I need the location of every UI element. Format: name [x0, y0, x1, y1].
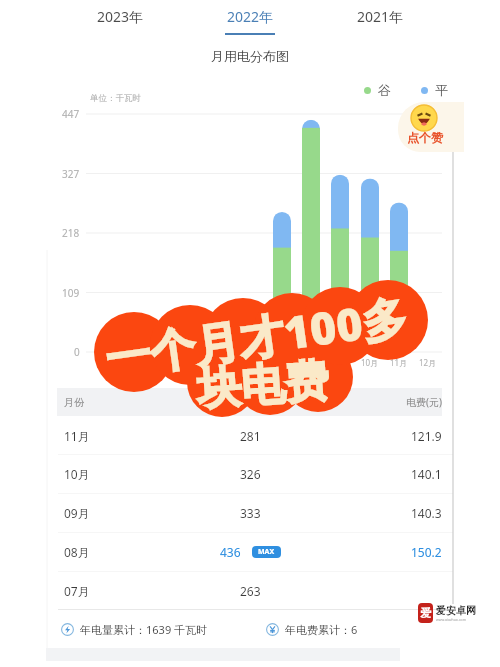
button[interactable]: 10月	[47, 454, 453, 493]
button[interactable]: Fee total	[266, 622, 358, 637]
staticText: 10月	[361, 357, 379, 368]
staticText: 08月	[302, 357, 320, 368]
staticText: 333	[240, 505, 261, 521]
button[interactable]: 08月	[47, 532, 453, 571]
button[interactable]: 谷	[364, 82, 391, 98]
staticText: 11月	[64, 428, 90, 444]
staticText: 月份	[64, 396, 84, 409]
staticText: 2022年	[227, 7, 274, 26]
staticText: 08月	[64, 544, 90, 560]
staticText: 2023年	[97, 7, 144, 26]
staticText: 年电量累计：1639 千瓦时	[80, 622, 208, 637]
staticText: 单位：千瓦时	[90, 93, 141, 104]
staticText: 谷	[378, 82, 391, 98]
staticText: 281	[240, 428, 261, 444]
staticText: 218	[62, 226, 80, 240]
staticText: 263	[240, 583, 261, 599]
staticText: 11月	[390, 357, 408, 368]
staticText: 447	[62, 107, 80, 121]
staticText: 109	[62, 286, 80, 300]
staticText: 爱	[420, 606, 431, 620]
button[interactable]: 2023年	[87, 0, 153, 35]
staticText: 月用电分布图	[211, 48, 289, 64]
staticText: 2021年	[357, 7, 404, 26]
staticText: 121.9	[411, 428, 442, 444]
staticText: 07月	[273, 357, 291, 368]
staticText: 平	[435, 82, 448, 98]
other: Energy total	[61, 623, 74, 636]
button[interactable]: Like	[398, 102, 464, 152]
staticText: 点个赞	[407, 130, 443, 145]
button[interactable]: 07月	[47, 571, 453, 610]
staticText: 块电费	[195, 353, 331, 418]
staticText: 年电费累计：6	[285, 622, 358, 637]
staticText: 140.3	[411, 505, 442, 521]
other: Fee total	[266, 623, 279, 636]
button[interactable]: Energy total	[61, 622, 208, 637]
staticText: 一个月才100多	[101, 285, 412, 388]
staticText: 12月	[419, 357, 437, 368]
button[interactable]: 平	[421, 82, 448, 98]
staticText: MAX	[258, 547, 275, 557]
staticText: 0	[74, 345, 80, 359]
staticText: 电费(元)	[406, 395, 442, 409]
staticText: 爱安卓网	[436, 604, 476, 617]
staticText: 09月	[64, 505, 90, 521]
button[interactable]: 2022年	[217, 0, 283, 35]
staticText: 436	[220, 544, 241, 560]
button[interactable]: 2021年	[347, 0, 413, 35]
staticText: 140.1	[411, 466, 442, 482]
button[interactable]: 11月	[47, 416, 453, 455]
button[interactable]: 09月	[47, 493, 453, 532]
staticText: 10月	[64, 466, 90, 482]
staticText: 327	[62, 167, 80, 181]
staticText: 07月	[64, 583, 90, 599]
staticText: 326	[240, 466, 261, 482]
staticText: 150.2	[411, 544, 442, 560]
staticText: www.aiazhuo.com	[436, 617, 466, 622]
